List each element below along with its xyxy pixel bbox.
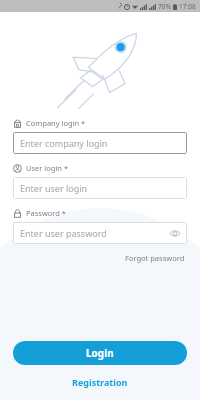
button[interactable]: Registration (66, 374, 134, 390)
button[interactable]: Show password (169, 227, 181, 239)
staticText: Enter user login (20, 182, 88, 194)
staticText: Company login * (26, 118, 86, 128)
staticText: 70% (158, 2, 171, 11)
staticText: Registration (72, 376, 128, 388)
staticText: Login (86, 346, 114, 360)
staticText: Forgot password (125, 253, 185, 263)
button[interactable]: Login (13, 341, 187, 365)
staticText: Enter user password (20, 227, 107, 239)
button[interactable]: Enter company login (13, 132, 187, 154)
button[interactable]: Forgot password (123, 251, 187, 265)
staticText: User login * (26, 163, 69, 173)
staticText: Enter company login (20, 137, 108, 149)
staticText: Password * (26, 208, 67, 218)
button[interactable]: Enter user login (13, 177, 187, 199)
staticText: 17:08 (179, 2, 196, 11)
button[interactable]: Enter user password (13, 222, 187, 244)
